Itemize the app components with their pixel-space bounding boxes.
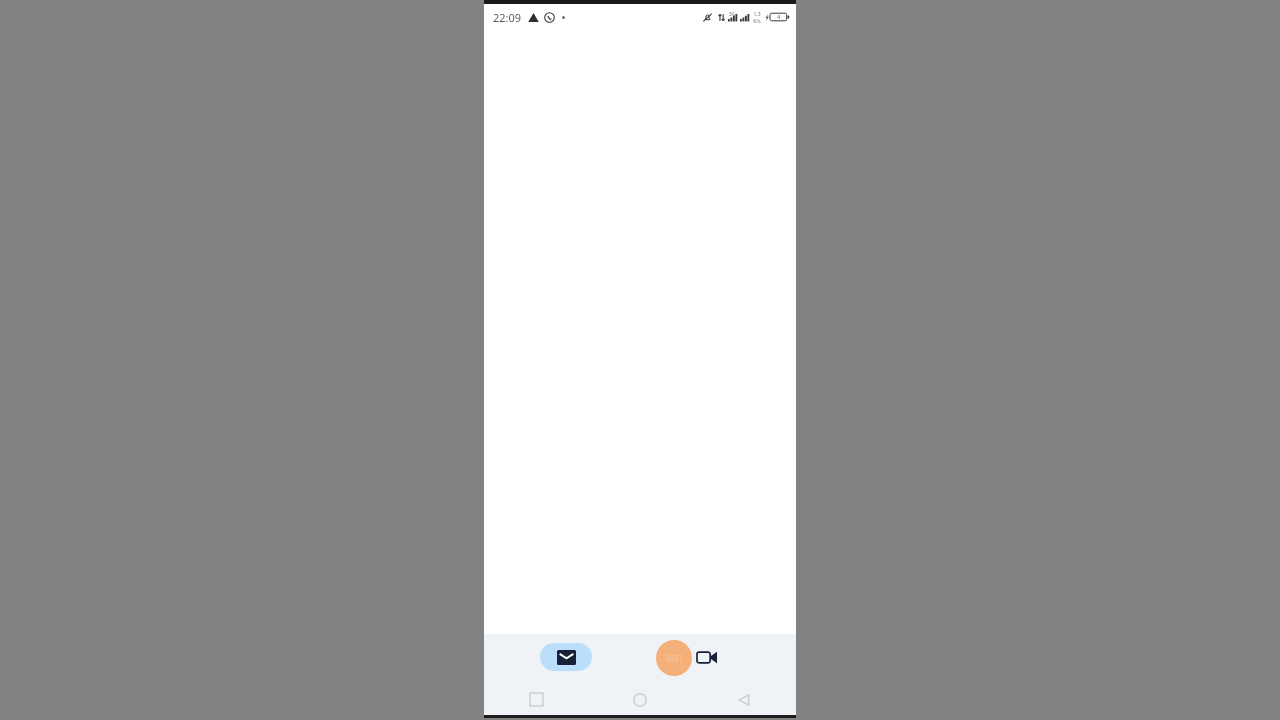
button[interactable]: Recent apps: [484, 684, 588, 715]
button[interactable]: Back: [692, 684, 796, 715]
button[interactable]: Video call: [692, 642, 722, 672]
staticText: 1,3: [753, 11, 761, 18]
button[interactable]: Home: [588, 684, 692, 715]
staticText: K/s: [753, 18, 761, 23]
staticText: 3G: [729, 11, 735, 17]
button[interactable]: Mail: [540, 643, 592, 671]
staticText: 4: [777, 13, 781, 21]
button[interactable]: Profile: [656, 640, 692, 676]
staticText: 22:09: [493, 10, 522, 25]
staticText: RMT: [666, 653, 683, 664]
